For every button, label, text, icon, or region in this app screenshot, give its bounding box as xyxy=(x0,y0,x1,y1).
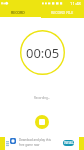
staticText: RECORD FILE xyxy=(51,10,74,15)
staticText: 11:48 xyxy=(70,1,81,7)
button[interactable]: RECORD xyxy=(0,7,41,18)
staticText: Download and play this xyxy=(19,138,51,142)
staticText: RECORD xyxy=(11,10,25,15)
button[interactable]: INSTALL xyxy=(63,140,74,146)
button[interactable]: Stop recording xyxy=(35,115,49,129)
button[interactable]: RECORD FILE xyxy=(41,7,84,18)
staticText: 00:05 xyxy=(26,44,60,62)
staticText: INSTALL xyxy=(64,141,74,145)
staticText: free game now xyxy=(19,143,40,147)
staticText: Recording... xyxy=(34,96,51,100)
button[interactable]: Download and play this xyxy=(5,137,79,150)
